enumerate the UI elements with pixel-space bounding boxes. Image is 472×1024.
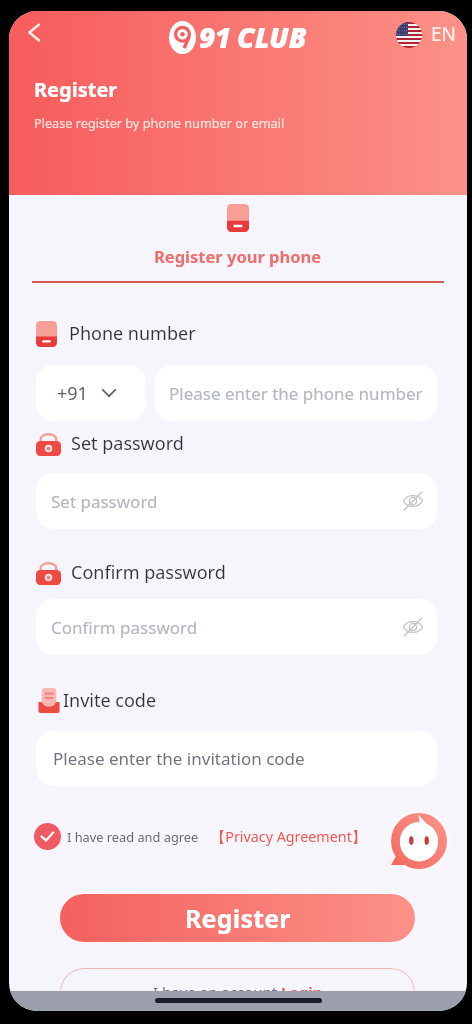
staticText: Set password	[71, 431, 184, 456]
button[interactable]: Please enter the phone number	[155, 365, 437, 421]
staticText: 【Privacy Agreement】	[211, 827, 367, 847]
button[interactable]: I have an account	[60, 968, 415, 1011]
button[interactable]: Show password	[399, 613, 427, 641]
button[interactable]: Show password	[399, 487, 427, 515]
button[interactable]: Customer support chat	[390, 812, 448, 870]
button[interactable]: Confirm password	[36, 599, 437, 655]
button[interactable]	[9, 204, 467, 232]
staticText: Confirm password	[71, 560, 226, 585]
button[interactable]: EN	[396, 22, 457, 48]
button[interactable]: Set password	[36, 473, 437, 529]
button[interactable]: Register	[60, 894, 415, 942]
staticText: 91	[199, 18, 231, 56]
staticText: I have read and agree	[67, 828, 199, 845]
staticText: Invite code	[63, 688, 157, 713]
staticText: CLUB	[237, 18, 307, 56]
staticText: Confirm password	[51, 616, 198, 639]
staticText: Register	[34, 76, 118, 103]
staticText: Please register by phone number or email	[34, 114, 285, 131]
staticText: I have an account	[153, 982, 281, 1002]
staticText: Login	[281, 982, 323, 1002]
staticText: EN	[431, 21, 457, 47]
staticText: Set password	[51, 490, 158, 513]
button[interactable]: Please enter the invitation code	[36, 731, 437, 786]
button[interactable]: 91	[169, 18, 307, 56]
staticText: Register	[185, 901, 291, 935]
staticText: Phone number	[69, 321, 196, 346]
staticText: Please enter the phone number	[169, 382, 423, 405]
button[interactable]: +91	[36, 365, 146, 421]
button[interactable]: I have read and agree	[34, 823, 367, 850]
staticText: Register your phone	[154, 245, 322, 267]
staticText: Please enter the invitation code	[53, 747, 305, 770]
button[interactable]: Back	[16, 14, 52, 50]
staticText: +91	[57, 381, 88, 406]
